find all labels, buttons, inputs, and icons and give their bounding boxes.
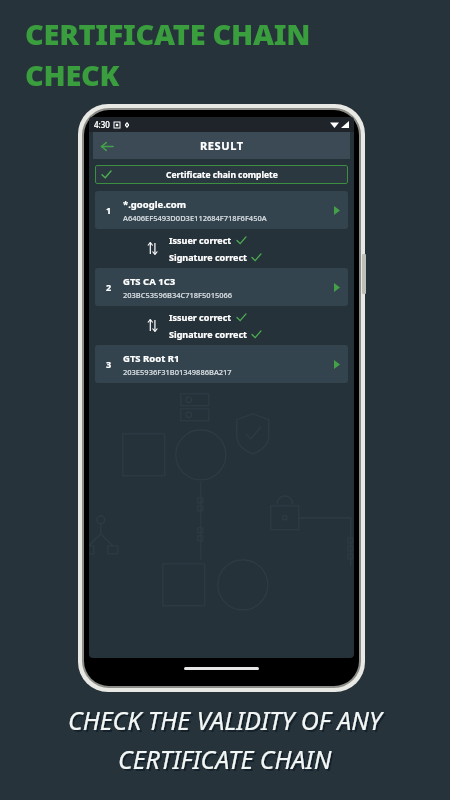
staticText: Certificate chain complete: [166, 169, 278, 181]
button[interactable]: Back: [93, 133, 119, 159]
staticText: 4:30: [94, 119, 110, 130]
button[interactable]: 2: [95, 268, 348, 306]
staticText: 2: [106, 281, 112, 293]
button[interactable]: 3: [95, 345, 348, 383]
staticText: 1: [106, 204, 112, 216]
button[interactable]: 1: [95, 191, 348, 229]
staticText: GTS CA 1C3: [123, 275, 176, 288]
staticText: CERTIFICATE CHAIN: [25, 14, 311, 53]
staticText: CHECK THE VALIDITY OF ANY: [70, 705, 384, 739]
staticText: GTS Root R1: [123, 352, 180, 365]
button[interactable]: Certificate chain complete: [95, 165, 348, 184]
staticText: CERTIFICATE CHAIN: [120, 744, 334, 778]
staticText: *.google.com: [123, 198, 186, 211]
staticText: A6406EF5493D0D3E112684F718F6F450A: [123, 213, 267, 223]
staticText: Signature correct: [169, 251, 247, 263]
staticText: RESULT: [200, 138, 244, 153]
staticText: CERTIFICATE CHAIN: [118, 742, 332, 776]
staticText: CHECK THE VALIDITY OF ANY: [68, 703, 382, 737]
staticText: 203E5936F31B01349886BA217: [123, 367, 232, 377]
staticText: Issuer correct: [169, 234, 232, 246]
staticText: 3: [106, 358, 112, 370]
staticText: Signature correct: [169, 328, 247, 340]
staticText: Issuer correct: [169, 311, 232, 323]
staticText: CHECK: [25, 55, 120, 94]
staticText: 203BC53596B34C718F5015066: [123, 290, 233, 300]
